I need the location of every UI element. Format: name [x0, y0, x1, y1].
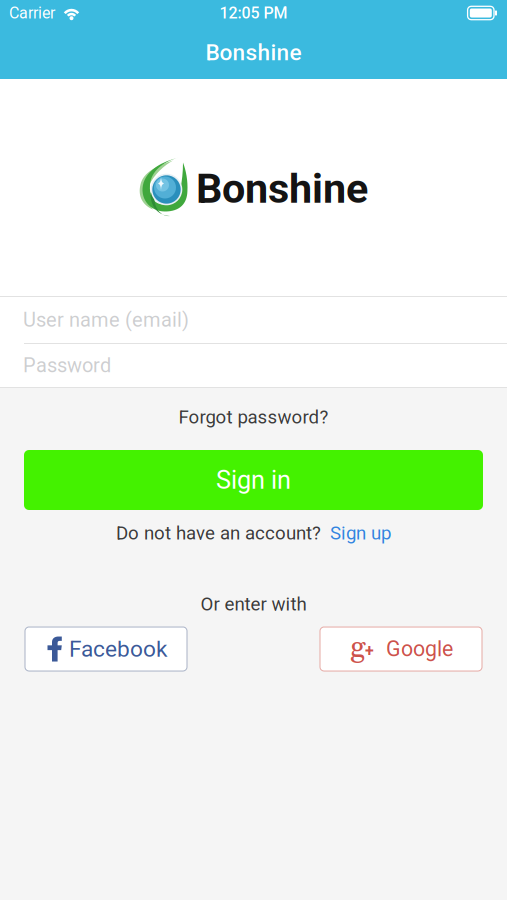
staticText: Or enter with — [200, 593, 306, 615]
staticText: + — [365, 642, 374, 660]
staticText: Sign up — [330, 522, 391, 544]
staticText: Bonshine — [205, 39, 301, 66]
button[interactable]: g — [320, 627, 482, 671]
staticText: Password — [23, 354, 111, 377]
staticText: Sign in — [216, 465, 291, 495]
button[interactable]: User name (email) — [0, 297, 507, 343]
button[interactable]: Password — [0, 344, 507, 387]
staticText: Facebook — [69, 636, 167, 662]
staticText: Carrier — [9, 4, 55, 22]
staticText: Bonshine — [196, 164, 368, 213]
button[interactable]: Forgot password? — [0, 402, 507, 432]
button[interactable]: Sign up — [330, 522, 391, 544]
button[interactable]: Facebook — [25, 627, 187, 671]
staticText: Do not have an account? — [116, 522, 321, 544]
staticText: g — [350, 628, 366, 667]
staticText: Forgot password? — [178, 406, 328, 428]
staticText: 12:05 PM — [219, 4, 287, 22]
staticText: Google — [386, 636, 453, 661]
button[interactable]: Sign in — [24, 450, 483, 510]
staticText: User name (email) — [23, 308, 189, 332]
